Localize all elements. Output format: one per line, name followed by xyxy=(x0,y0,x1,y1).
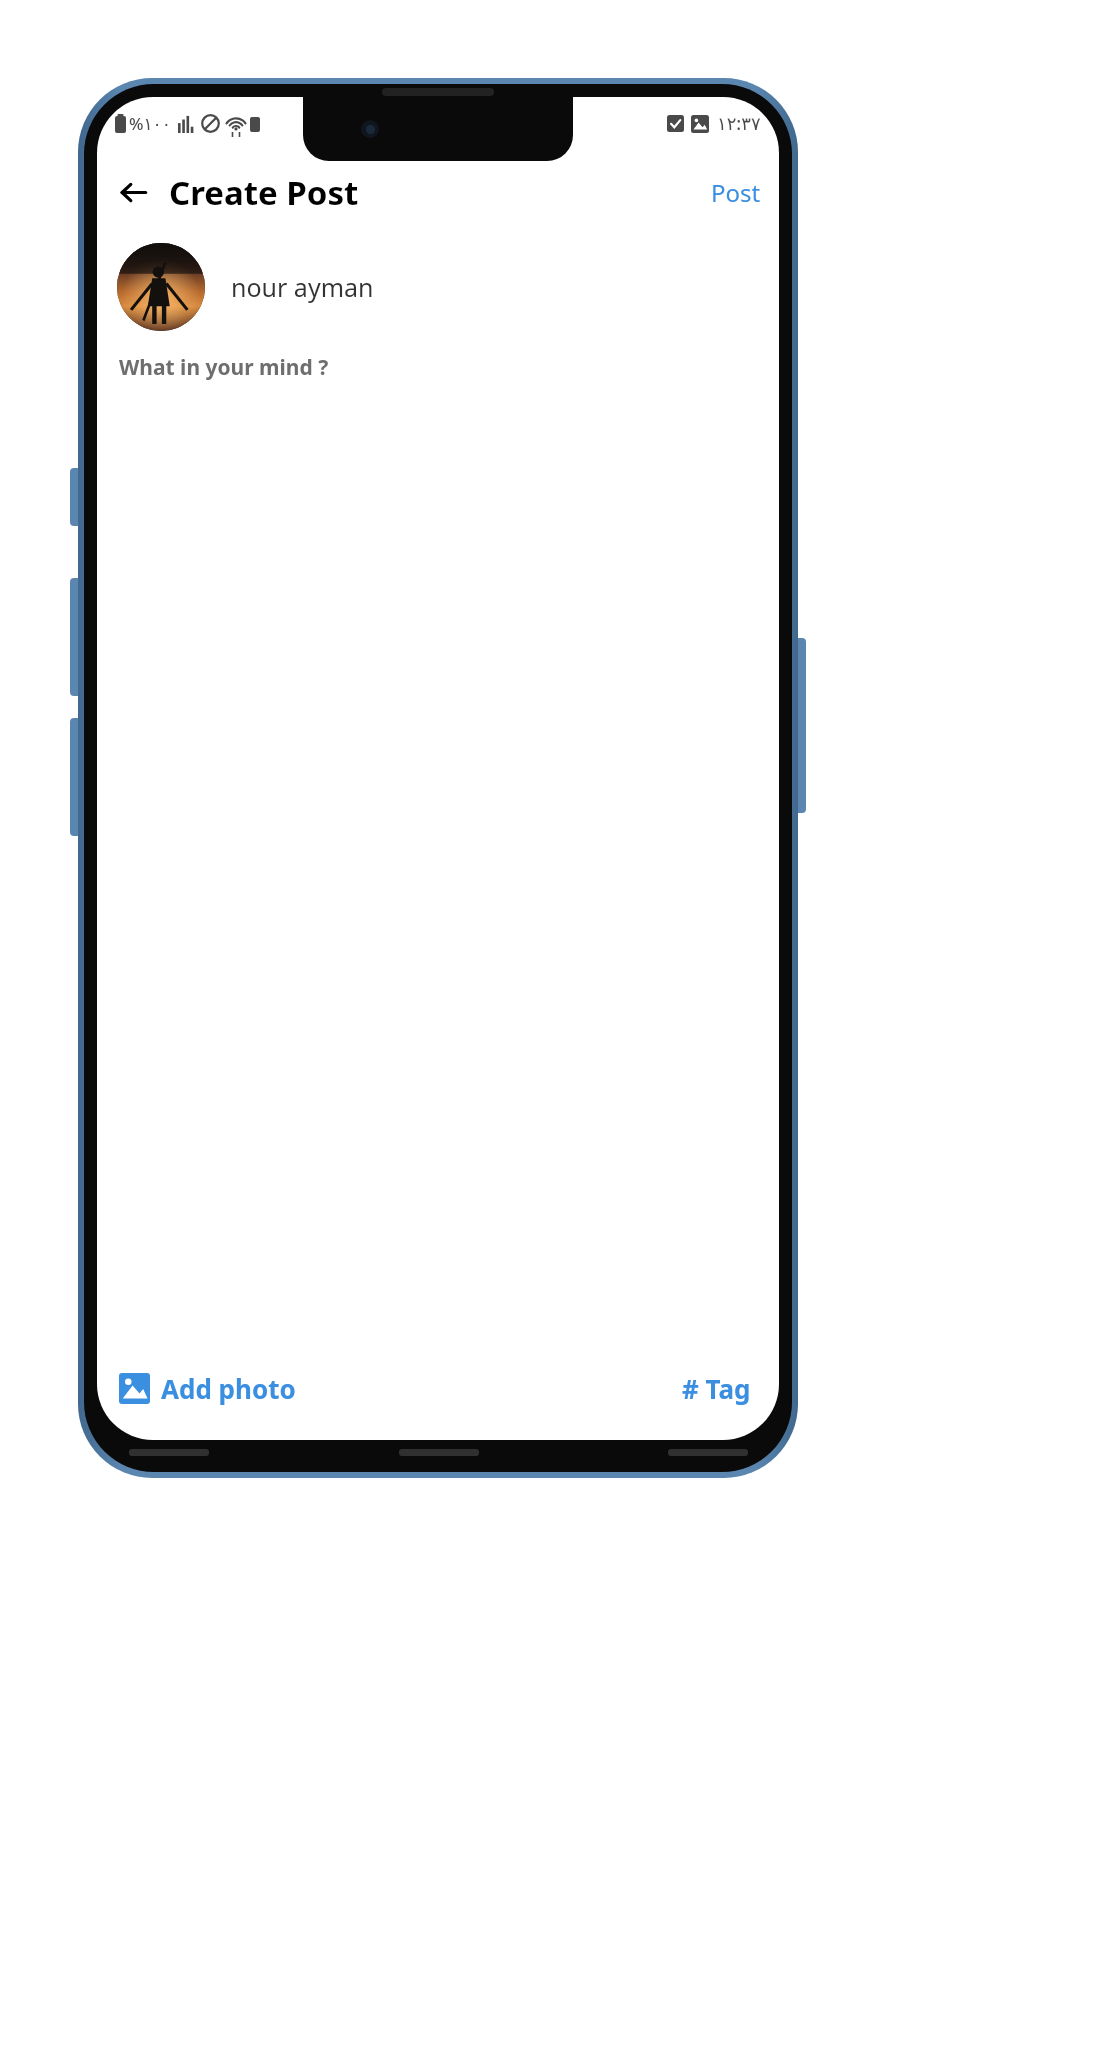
staticText: What in your mind ? xyxy=(119,353,329,382)
staticText: ١٢:٣٧ xyxy=(717,111,761,136)
staticText: nour ayman xyxy=(231,270,374,304)
staticText: Create Post xyxy=(169,170,359,215)
staticText: Add photo xyxy=(161,1371,296,1406)
staticText: # Tag xyxy=(682,1371,751,1406)
staticText: %١٠٠ xyxy=(129,112,171,135)
button[interactable]: # Tag xyxy=(668,1361,765,1416)
staticText: Post xyxy=(711,176,761,209)
button[interactable]: Post xyxy=(693,166,779,219)
button[interactable]: Back xyxy=(107,166,159,218)
button[interactable]: nour ayman xyxy=(97,235,779,339)
button[interactable]: Add photo xyxy=(111,1361,304,1416)
